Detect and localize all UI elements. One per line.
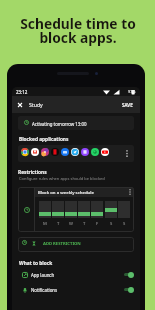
button[interactable]: More options bbox=[18, 145, 134, 162]
staticText: 97% bbox=[128, 89, 136, 94]
button[interactable]: Toggle Notifications bbox=[124, 286, 134, 293]
button[interactable]: Toggle App launch bbox=[124, 271, 134, 278]
staticText: Blocked applications bbox=[19, 136, 69, 143]
button[interactable]: ADD RESTRICTION bbox=[18, 237, 134, 252]
button[interactable]: SAVE bbox=[116, 96, 138, 113]
staticText: 23:12 bbox=[16, 89, 28, 95]
staticText: Restrictions bbox=[18, 169, 47, 176]
button[interactable]: More options bbox=[121, 145, 133, 162]
staticText: SAVE bbox=[122, 102, 133, 108]
staticText: M bbox=[43, 221, 47, 227]
staticText: F bbox=[96, 221, 99, 227]
staticText: Study bbox=[29, 101, 43, 108]
button[interactable]: App launch bbox=[18, 268, 134, 282]
staticText: What to block bbox=[19, 260, 53, 267]
staticText: T bbox=[57, 221, 60, 227]
staticText: Notifications bbox=[31, 287, 58, 293]
staticText: Configure rules when apps should be bloc… bbox=[19, 176, 105, 181]
staticText: App launch bbox=[31, 272, 55, 278]
button[interactable]: Activating tomorrow 13:00 bbox=[18, 116, 134, 130]
staticText: T bbox=[83, 221, 86, 227]
staticText: S bbox=[123, 221, 126, 227]
button[interactable]: Block on a weekly schedule bbox=[18, 187, 134, 232]
staticText: S bbox=[110, 221, 113, 227]
staticText: ADD RESTRICTION bbox=[43, 241, 81, 247]
button[interactable]: Schedule options bbox=[125, 187, 134, 197]
button[interactable]: Notifications bbox=[18, 283, 134, 297]
staticText: Block on a weekly schedule bbox=[38, 189, 94, 195]
staticText: Schedule time to block apps. bbox=[20, 14, 136, 47]
staticText: W bbox=[69, 221, 73, 227]
staticText: Activating tomorrow 13:00 bbox=[32, 121, 87, 127]
button[interactable]: Close bbox=[13, 96, 26, 113]
